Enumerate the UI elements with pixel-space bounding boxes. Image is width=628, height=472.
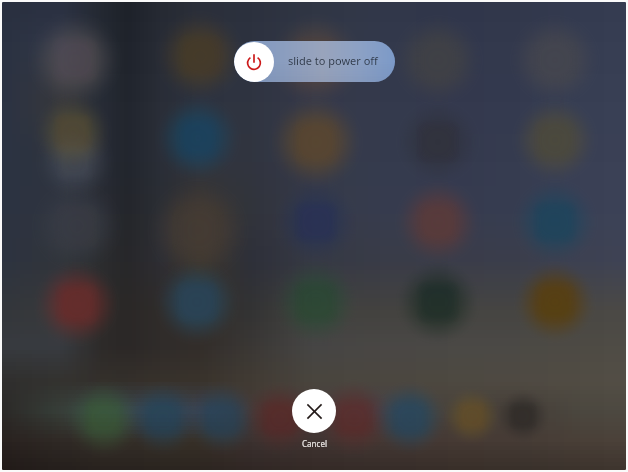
button[interactable]: slide to power off	[234, 41, 395, 82]
other: Cancel	[292, 389, 336, 433]
staticText: slide to power off	[288, 53, 378, 68]
button[interactable]: Cancel	[292, 389, 336, 449]
staticText: Cancel	[302, 438, 327, 449]
